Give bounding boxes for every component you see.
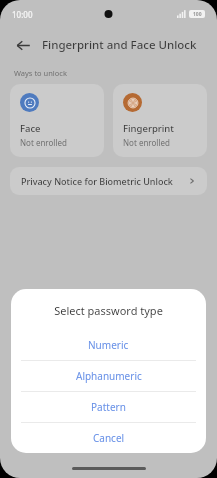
staticText: Face <box>20 122 41 135</box>
button[interactable]: Cancel <box>11 423 206 453</box>
button[interactable]: Alphanumeric <box>11 361 206 391</box>
staticText: Ways to unlock <box>14 68 67 78</box>
staticText: 100 <box>193 11 202 18</box>
staticText: Privacy Notice for Biometric Unlock <box>21 175 188 187</box>
staticText: Pattern <box>91 400 126 414</box>
staticText: Numeric <box>88 338 129 352</box>
button[interactable]: Privacy Notice for Biometric Unlock <box>10 167 207 195</box>
button[interactable]: Face <box>10 84 104 157</box>
staticText: Fingerprint and Face Unlock <box>42 37 197 53</box>
staticText: Not enrolled <box>123 137 170 148</box>
staticText: Fingerprint <box>123 122 174 135</box>
staticText: Select password type <box>11 303 206 318</box>
staticText: 10:00 <box>12 9 33 20</box>
staticText: Not enrolled <box>20 137 67 148</box>
staticText: Alphanumeric <box>76 369 142 383</box>
staticText: Cancel <box>93 431 125 445</box>
button[interactable]: Pattern <box>11 392 206 422</box>
button[interactable]: Fingerprint <box>113 84 207 157</box>
button[interactable]: Back <box>10 32 36 58</box>
button[interactable]: Numeric <box>11 330 206 360</box>
